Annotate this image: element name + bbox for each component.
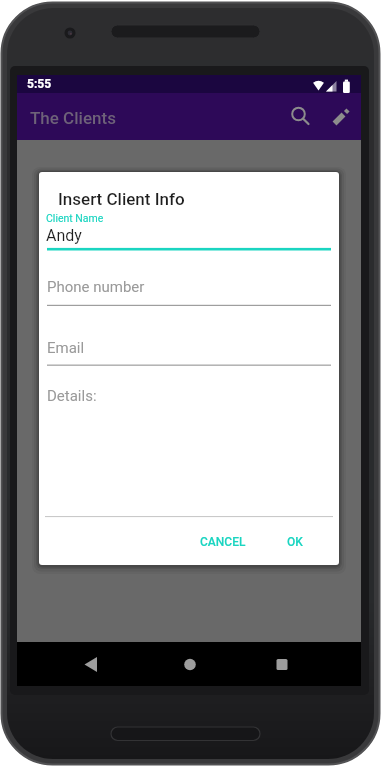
staticText: Andy bbox=[46, 226, 82, 245]
button[interactable] bbox=[70, 645, 110, 683]
button[interactable] bbox=[264, 645, 304, 683]
button[interactable]: Details: bbox=[45, 382, 333, 512]
staticText: Email bbox=[47, 339, 85, 357]
staticText: CANCEL bbox=[200, 535, 246, 549]
button[interactable]: Andy bbox=[45, 224, 333, 250]
staticText: The Clients bbox=[30, 108, 116, 128]
button[interactable]: OK bbox=[278, 522, 326, 558]
staticText: Phone number bbox=[47, 278, 145, 296]
button[interactable] bbox=[285, 100, 313, 128]
button[interactable] bbox=[326, 100, 354, 128]
staticText: Insert Client Info bbox=[58, 189, 185, 209]
button[interactable]: CANCEL bbox=[194, 522, 270, 558]
button[interactable] bbox=[170, 645, 210, 683]
button[interactable]: Email bbox=[45, 334, 333, 364]
staticText: Client Name bbox=[46, 212, 104, 224]
button[interactable]: Phone number bbox=[45, 274, 333, 304]
staticText: Details: bbox=[47, 387, 97, 405]
staticText: OK bbox=[287, 535, 303, 549]
staticText: 5:55 bbox=[27, 77, 52, 91]
